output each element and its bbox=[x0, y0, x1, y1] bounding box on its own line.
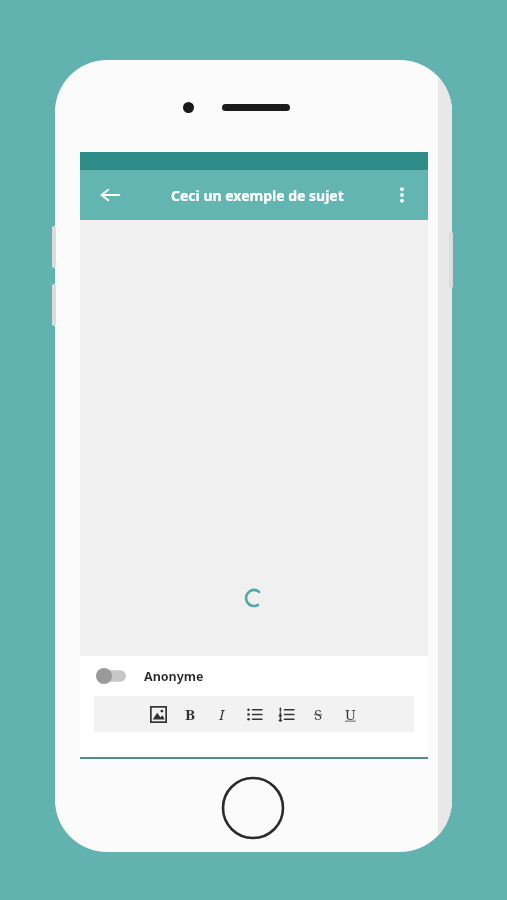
button[interactable]: S bbox=[305, 701, 331, 727]
staticText: I bbox=[219, 704, 225, 724]
staticText: S bbox=[314, 704, 323, 724]
button[interactable]: More options bbox=[384, 177, 420, 213]
staticText: Anonyme bbox=[144, 668, 204, 685]
button[interactable]: Bulleted list bbox=[241, 701, 267, 727]
staticText: U bbox=[345, 704, 356, 724]
staticText: B bbox=[185, 704, 196, 724]
button[interactable]: U bbox=[337, 701, 363, 727]
button[interactable]: Home bbox=[221, 776, 285, 840]
button[interactable]: I bbox=[209, 701, 235, 727]
button[interactable]: B bbox=[177, 701, 203, 727]
button[interactable]: Anonyme bbox=[80, 656, 428, 696]
staticText: Ceci un exemple de sujet bbox=[171, 186, 344, 205]
button[interactable]: Numbered list bbox=[273, 701, 299, 727]
button[interactable]: Insert image bbox=[145, 701, 171, 727]
button[interactable]: Back bbox=[90, 175, 130, 215]
